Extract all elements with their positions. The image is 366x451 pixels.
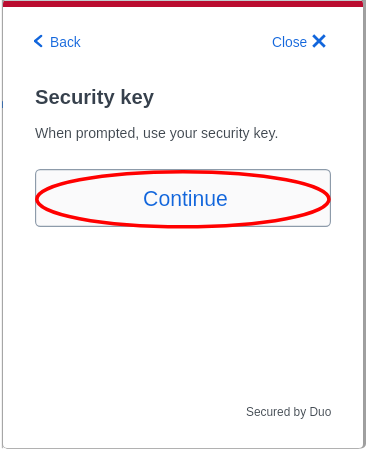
button[interactable]: Back	[34, 35, 81, 50]
button[interactable]: Continue	[35, 169, 331, 227]
staticText: Close	[272, 35, 308, 50]
staticText: When prompted, use your security key.	[35, 125, 279, 141]
staticText: Secured by Duo	[246, 405, 332, 418]
button[interactable]: Close	[272, 35, 324, 50]
staticText: Security key	[35, 86, 154, 109]
staticText: Continue	[143, 187, 228, 211]
other: Close	[313, 35, 325, 47]
staticText: Back	[50, 35, 81, 50]
